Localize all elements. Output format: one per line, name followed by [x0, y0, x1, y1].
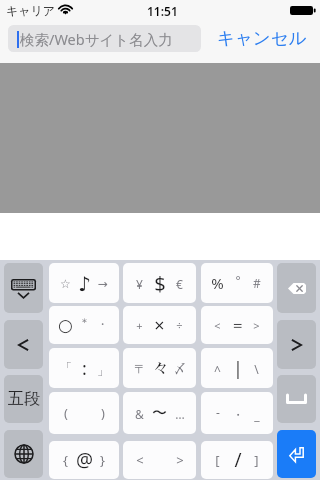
- button[interactable]: Previous candidate: [4, 320, 43, 369]
- staticText: 11:51: [147, 3, 178, 19]
- button[interactable]: Switch keyboard language: [4, 430, 43, 478]
- button[interactable]: ☆: [49, 263, 119, 303]
- staticText: &: [135, 406, 144, 422]
- button[interactable]: Hide keyboard: [4, 263, 43, 313]
- staticText: }: [100, 451, 105, 469]
- staticText: °: [235, 272, 241, 288]
- button[interactable]: 検索/Webサイト名入力: [8, 25, 201, 52]
- staticText: ♪: [78, 272, 91, 295]
- staticText: ¥: [136, 276, 143, 292]
- staticText: _: [254, 407, 260, 423]
- staticText: ＝: [230, 316, 245, 335]
- staticText: -: [216, 404, 220, 420]
- staticText: {: [63, 451, 68, 469]
- button[interactable]: ○: [49, 306, 119, 344]
- staticText: \: [254, 361, 259, 377]
- button[interactable]: &: [123, 392, 196, 434]
- button[interactable]: -: [201, 392, 273, 434]
- staticText: [: [215, 451, 220, 469]
- staticText: :: [82, 356, 87, 381]
- staticText: …: [175, 406, 185, 422]
- staticText: 〆: [174, 361, 186, 376]
- staticText: 〜: [152, 404, 167, 423]
- button[interactable]: Next candidate: [277, 320, 316, 369]
- staticText: /: [234, 447, 242, 473]
- button[interactable]: Return: [277, 430, 316, 478]
- staticText: 〒: [134, 361, 146, 376]
- staticText: 々: [151, 356, 168, 380]
- staticText: 」: [97, 363, 109, 378]
- staticText: <: [136, 451, 144, 469]
- staticText: ・: [232, 407, 244, 422]
- button[interactable]: ¥: [123, 263, 196, 303]
- staticText: 五段: [8, 389, 40, 409]
- button[interactable]: +: [123, 306, 196, 344]
- staticText: ÷: [176, 318, 183, 333]
- staticText: ^: [214, 362, 221, 378]
- button[interactable]: Space: [277, 375, 316, 423]
- button[interactable]: 「: [49, 348, 119, 388]
- staticText: ＊: [79, 315, 90, 329]
- button[interactable]: Five row layout: [4, 375, 43, 423]
- staticText: €: [176, 276, 183, 292]
- staticText: ): [101, 404, 105, 422]
- staticText: <: [214, 318, 221, 333]
- button[interactable]: %: [201, 263, 273, 303]
- staticText: >: [253, 318, 260, 333]
- button[interactable]: キャンセル: [214, 24, 310, 52]
- button[interactable]: [: [201, 441, 273, 479]
- staticText: $: [154, 270, 166, 297]
- staticText: ○: [58, 315, 73, 335]
- staticText: (: [64, 404, 68, 422]
- button[interactable]: (: [49, 392, 119, 434]
- staticText: 「: [60, 360, 72, 375]
- staticText: |: [233, 356, 243, 381]
- staticText: >: [176, 451, 184, 469]
- staticText: ☆: [60, 277, 71, 291]
- button[interactable]: <: [201, 306, 273, 344]
- staticText: →: [97, 277, 108, 291]
- staticText: ×: [154, 313, 165, 338]
- staticText: +: [136, 318, 143, 333]
- button[interactable]: Delete: [277, 263, 316, 313]
- staticText: ・: [97, 317, 108, 331]
- button[interactable]: 〒: [123, 348, 196, 388]
- button[interactable]: <: [123, 441, 196, 479]
- staticText: %: [211, 273, 224, 293]
- staticText: 検索/Webサイト名入力: [20, 29, 173, 49]
- staticText: @: [76, 447, 93, 473]
- staticText: ]: [254, 451, 259, 469]
- button[interactable]: ^: [201, 348, 273, 388]
- staticText: キャンセル: [217, 27, 307, 49]
- button[interactable]: {: [49, 441, 119, 479]
- staticText: キャリア: [6, 3, 56, 18]
- staticText: #: [253, 275, 261, 291]
